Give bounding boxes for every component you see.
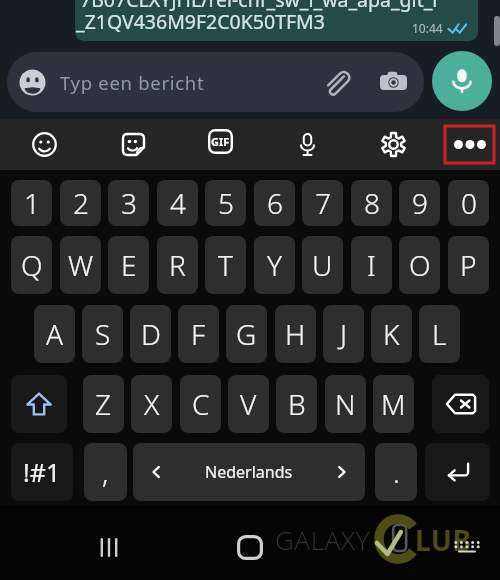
button[interactable]: Q (11, 236, 52, 294)
staticText: X (144, 385, 160, 423)
button[interactable]: 2 (60, 180, 101, 226)
button[interactable]: 4 (157, 180, 198, 226)
staticText: Q (21, 246, 43, 284)
button[interactable]: B (276, 375, 317, 433)
button[interactable]: I (351, 236, 392, 294)
staticText: M (381, 385, 406, 423)
staticText: 5 (218, 184, 234, 222)
button[interactable]: X (131, 375, 172, 433)
button[interactable]: H (275, 305, 316, 363)
button[interactable]: W (60, 236, 101, 294)
button[interactable]: Stickers (111, 119, 155, 170)
button[interactable]: Y (254, 236, 295, 294)
button[interactable]: GIF (198, 119, 242, 163)
staticText: GALAXY (275, 522, 370, 557)
button[interactable]: Enter (425, 443, 490, 501)
button[interactable]: 8 (351, 180, 392, 226)
button[interactable]: Backspace (432, 375, 489, 433)
button[interactable]: Shift (11, 375, 67, 433)
button[interactable]: Home (232, 530, 268, 564)
button[interactable]: C (180, 375, 221, 433)
staticText: I (367, 246, 376, 284)
staticText: F (191, 315, 206, 353)
button[interactable]: Camera (376, 65, 410, 99)
staticText: 1 (24, 184, 40, 222)
button[interactable]: Z (83, 375, 124, 433)
staticText: T (218, 246, 233, 284)
button[interactable]: S (82, 305, 123, 363)
button[interactable]: . (375, 443, 417, 501)
staticText: V (240, 385, 257, 423)
button[interactable]: K (371, 305, 412, 363)
button[interactable]: E (108, 236, 149, 294)
staticText: 10:44 (412, 20, 443, 36)
button[interactable]: Voice message (432, 51, 492, 111)
button[interactable]: 7 (302, 180, 343, 226)
button[interactable]: Typ een bericht (7, 52, 424, 112)
staticText: Y (267, 246, 282, 284)
staticText: !#1 (23, 455, 61, 489)
button[interactable]: A (34, 305, 75, 363)
staticText: U (312, 246, 333, 284)
button[interactable]: Nederlands (133, 443, 365, 501)
button[interactable]: M (373, 375, 414, 433)
staticText: Z (95, 385, 112, 423)
button[interactable]: 1 (11, 180, 52, 226)
staticText: A (46, 315, 64, 353)
staticText: , (102, 453, 109, 491)
button[interactable]: V (228, 375, 269, 433)
staticText: GIF (211, 134, 230, 149)
staticText: Nederlands (205, 461, 293, 483)
staticText: _Z1QV436M9F2C0K50TFM3 (76, 8, 325, 35)
staticText: H (285, 315, 306, 353)
button[interactable]: D (130, 305, 171, 363)
button[interactable]: More options (445, 126, 494, 163)
button[interactable]: 6 (254, 180, 295, 226)
staticText: S (95, 315, 111, 353)
button[interactable]: !#1 (11, 443, 73, 501)
button[interactable]: 5 (205, 180, 246, 226)
staticText: 0 (461, 184, 477, 222)
staticText: J (340, 315, 348, 353)
button[interactable]: Attach (319, 65, 353, 99)
button[interactable]: F (178, 305, 219, 363)
button[interactable]: R (157, 236, 198, 294)
staticText: K (383, 315, 400, 353)
staticText: 9 (412, 184, 428, 222)
staticText: 2 (73, 184, 89, 222)
button[interactable]: N (325, 375, 366, 433)
button[interactable]: O (399, 236, 440, 294)
button[interactable]: J (323, 305, 364, 363)
button[interactable]: Emoji (22, 119, 66, 170)
button[interactable]: Hide keyboard (450, 532, 483, 562)
staticText: G (236, 315, 257, 353)
button[interactable]: 9 (399, 180, 440, 226)
button[interactable]: T (205, 236, 246, 294)
staticText: 8 (364, 184, 380, 222)
staticText: N (335, 385, 356, 423)
staticText: W (68, 246, 94, 284)
button[interactable]: , (84, 443, 127, 501)
staticText: L (432, 315, 447, 353)
staticText: 6 (267, 184, 283, 222)
button[interactable]: Voice input (285, 119, 329, 170)
staticText: D (141, 315, 161, 353)
button[interactable]: Recents (91, 530, 127, 564)
button[interactable]: 3 (108, 180, 149, 226)
staticText: C (192, 385, 210, 423)
staticText: 3 (121, 184, 137, 222)
button[interactable]: G (226, 305, 267, 363)
staticText: 7 (315, 184, 331, 222)
staticText: B (288, 385, 306, 423)
button[interactable]: U (302, 236, 343, 294)
button[interactable]: L (419, 305, 460, 363)
staticText: E (121, 246, 137, 284)
staticText: LUB (415, 521, 472, 559)
button[interactable]: 0 (448, 180, 489, 226)
button[interactable]: P (448, 236, 489, 294)
staticText: O (409, 246, 431, 284)
staticText: 4 (170, 184, 186, 222)
staticText: R (169, 246, 186, 284)
button[interactable]: Settings (371, 119, 415, 170)
staticText: . (393, 453, 400, 491)
